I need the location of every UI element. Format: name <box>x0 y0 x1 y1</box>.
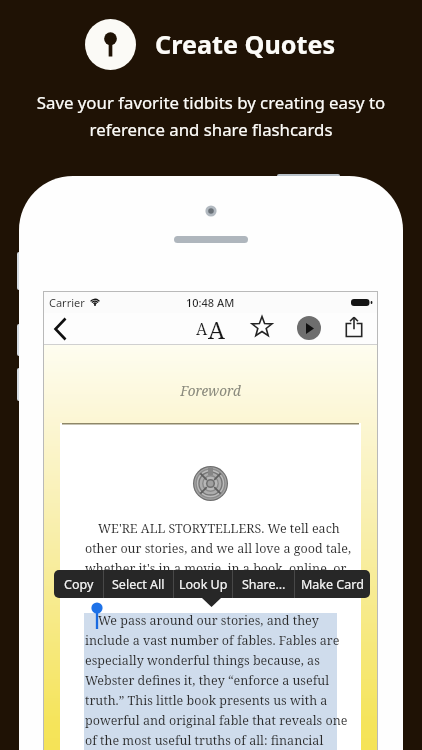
button[interactable]: Look Up <box>174 570 232 598</box>
staticText: Make Card <box>301 576 364 593</box>
button[interactable]: Make Card <box>295 570 370 598</box>
button[interactable]: Text size <box>196 315 225 342</box>
staticText: WE'RE ALL STORYTELLERS. We tell each oth… <box>85 520 353 577</box>
button[interactable]: Play <box>297 316 321 340</box>
staticText: 10:48 AM <box>186 295 235 310</box>
staticText: Share… <box>242 576 286 593</box>
staticText: A <box>196 318 208 340</box>
staticText: Save your favorite tidbits by creating e… <box>12 91 410 141</box>
button[interactable]: Back <box>47 313 73 339</box>
staticText: Select All <box>112 576 165 593</box>
staticText: Create Quotes <box>155 27 336 61</box>
button[interactable]: Copy <box>54 570 103 598</box>
button[interactable]: Share <box>343 316 365 338</box>
staticText: We pass around our stories, and they inc… <box>85 612 353 749</box>
button[interactable]: Bookmark <box>251 315 273 337</box>
staticText: A <box>208 313 225 340</box>
staticText: Copy <box>64 576 94 593</box>
staticText: Foreword <box>43 382 378 400</box>
button[interactable]: Select All <box>104 570 173 598</box>
staticText: Look Up <box>179 576 228 593</box>
staticText: Carrier <box>49 295 85 310</box>
button[interactable]: Share… <box>233 570 294 598</box>
